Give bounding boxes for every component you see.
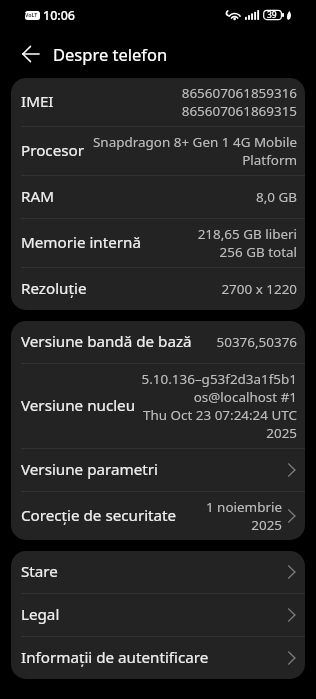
button[interactable]: Versiune parametri [11, 449, 305, 491]
button[interactable]: Versiune bandă de bază [11, 321, 305, 363]
staticText: Versiune bandă de bază [21, 333, 192, 351]
staticText: Versiune nucleu [21, 397, 136, 415]
staticText: IMEI [21, 93, 54, 111]
staticText: 8,0 GB [256, 188, 297, 206]
staticText: 2700 x 1220 [221, 280, 297, 298]
staticText: Legal [21, 606, 60, 624]
staticText: VoLTE [25, 11, 40, 20]
button[interactable]: Back [17, 40, 45, 68]
staticText: 5.10.136–g53f2d3a1f5b1 os@localhost #1 T… [138, 370, 297, 442]
button[interactable]: RAM [11, 176, 305, 218]
button[interactable]: Procesor [11, 127, 305, 175]
staticText: Despre telefon [53, 43, 168, 65]
button[interactable]: Rezoluție [11, 268, 305, 310]
staticText: Rezoluție [21, 280, 87, 298]
staticText: 39 [267, 9, 277, 21]
staticText: Procesor [21, 142, 84, 160]
button[interactable]: Legal [11, 594, 305, 636]
staticText: Snapdragon 8+ Gen 1 4G Mobile Platform [86, 133, 297, 169]
staticText: Stare [21, 563, 58, 581]
staticText: Informații de autentificare [21, 649, 209, 667]
button[interactable]: Memorie internă [11, 219, 305, 267]
button[interactable]: Versiune nucleu [11, 364, 305, 448]
button[interactable]: IMEI [11, 78, 305, 126]
staticText: Versiune parametri [21, 461, 158, 479]
staticText: Memorie internă [21, 234, 141, 252]
staticText: 10:06 [43, 7, 76, 24]
button[interactable]: Informații de autentificare [11, 637, 305, 679]
staticText: RAM [21, 188, 54, 206]
staticText: 50376,50376 [216, 333, 297, 351]
button[interactable]: Stare [11, 551, 305, 593]
staticText: 218,65 GB liberi 256 GB total [197, 225, 297, 261]
staticText: Corecție de securitate [21, 507, 177, 525]
staticText: 1 noiembrie 2025 [179, 498, 282, 534]
staticText: 865607061859316 865607061869315 [181, 84, 297, 120]
button[interactable]: Corecție de securitate [11, 492, 305, 540]
